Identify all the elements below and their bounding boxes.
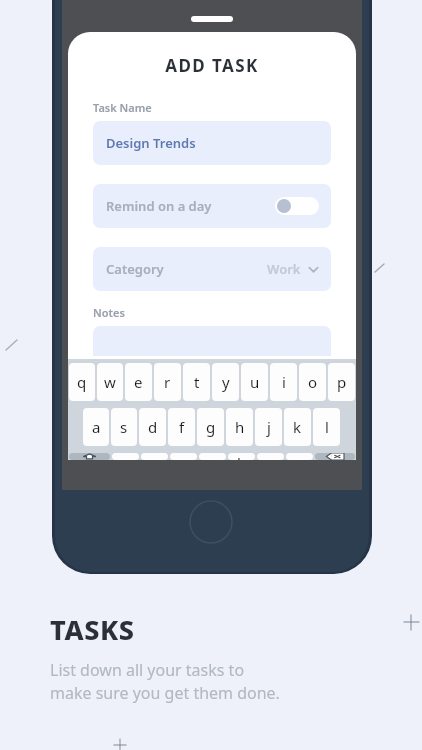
staticText: s [120, 417, 128, 437]
staticText: Design Trends [106, 134, 196, 152]
button[interactable]: Reminder toggle [275, 197, 319, 215]
staticText: Category [106, 260, 164, 278]
staticText: p [337, 372, 347, 392]
staticText: l [325, 417, 329, 437]
staticText: TASKS [50, 611, 135, 648]
button[interactable]: Design Trends [93, 121, 331, 165]
button[interactable]: b [228, 453, 255, 460]
staticText: a [92, 417, 101, 437]
staticText: i [282, 372, 286, 392]
button[interactable]: m [286, 453, 313, 460]
staticText: Remind on a day [106, 197, 212, 215]
staticText: Task Name [93, 100, 152, 115]
staticText: q [77, 372, 87, 392]
staticText: Notes [93, 305, 125, 320]
staticText: u [250, 372, 260, 392]
button[interactable]: Category [93, 247, 331, 291]
button[interactable]: g [197, 408, 224, 446]
staticText: e [134, 372, 143, 392]
button[interactable]: o [299, 363, 326, 401]
staticText: j [267, 417, 271, 437]
button[interactable]: s [111, 408, 137, 446]
button[interactable]: n [257, 453, 284, 460]
button[interactable]: a [83, 408, 109, 446]
button[interactable]: v [199, 453, 226, 460]
button[interactable]: k [284, 408, 311, 446]
staticText: y [222, 372, 230, 392]
staticText: r [164, 372, 171, 392]
button[interactable]: Backspace [315, 453, 355, 460]
staticText: f [179, 417, 185, 437]
staticText: k [293, 417, 302, 437]
button[interactable]: e [125, 363, 152, 401]
staticText: ADD TASK [68, 54, 356, 77]
button[interactable]: Shift [69, 453, 110, 460]
button[interactable]: p [328, 363, 355, 401]
staticText: t [194, 372, 200, 392]
button[interactable]: x [141, 453, 168, 460]
staticText: b [237, 453, 247, 460]
button[interactable]: y [212, 363, 239, 401]
button[interactable]: f [168, 408, 195, 446]
button[interactable]: d [139, 408, 166, 446]
button[interactable]: c [170, 453, 197, 460]
button[interactable]: z [112, 453, 139, 460]
staticText: List down all your tasks to make sure yo… [50, 659, 280, 704]
button[interactable]: l [313, 408, 340, 446]
staticText: g [206, 417, 216, 437]
button[interactable]: u [241, 363, 268, 401]
button[interactable]: h [226, 408, 253, 446]
button[interactable]: i [270, 363, 297, 401]
staticText: o [308, 372, 318, 392]
button[interactable]: t [183, 363, 210, 401]
staticText: Work [267, 260, 301, 278]
staticText: d [148, 417, 158, 437]
button[interactable]: w [97, 363, 123, 401]
staticText: w [104, 372, 116, 392]
button[interactable]: Remind on a day [93, 184, 331, 228]
button[interactable]: r [154, 363, 181, 401]
staticText: h [235, 417, 245, 437]
button[interactable]: q [69, 363, 95, 401]
button[interactable]: j [255, 408, 282, 446]
